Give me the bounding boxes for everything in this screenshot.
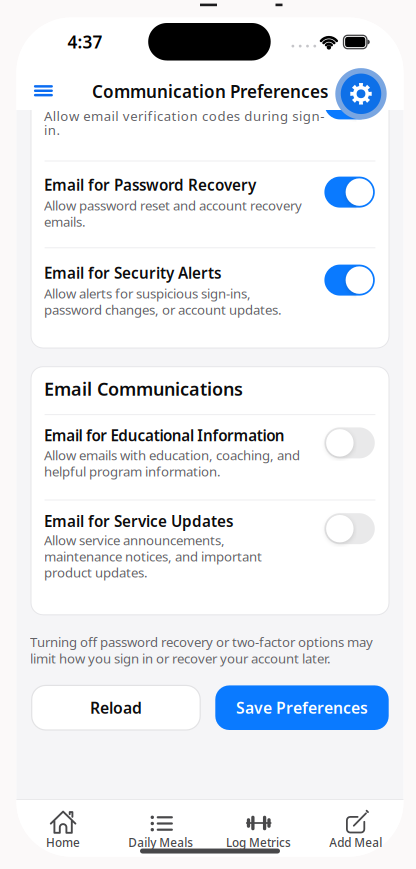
button[interactable]: Email verification codes [324,88,375,119]
button[interactable]: Log Metrics [210,800,307,850]
button[interactable]: Reload [32,685,200,730]
button[interactable]: Email for Service Updates [324,513,375,544]
button[interactable]: Email for Security Alerts [324,265,375,296]
staticText: Save Preferences [236,697,368,718]
staticText: Allow alerts for suspicious sign-ins, pa… [44,285,282,318]
staticText: Email for Password Recovery [44,175,256,195]
staticText: Home [46,835,80,850]
button[interactable]: Add Meal [307,800,403,850]
staticText: Allow password reset and account recover… [44,197,302,230]
staticText: Email Communications [44,377,243,401]
button[interactable]: Home [16,800,113,850]
staticText: Communication Preferences [92,80,328,103]
staticText: Reload [90,697,142,718]
staticText: Allow service announcements, maintenance… [44,532,262,580]
staticText: Email for Educational Information [44,425,285,445]
button[interactable]: Email for Password Recovery [324,177,375,208]
button[interactable]: Daily Meals [113,800,210,850]
button[interactable]: Save Preferences [215,685,389,730]
staticText: Add Meal [329,835,382,850]
staticText: Daily Meals [128,835,193,850]
staticText: Turning off password recovery or two-fac… [30,633,373,667]
staticText: Log Metrics [226,835,291,850]
staticText: Email for Security Alerts [44,263,221,283]
staticText: Allow emails with education, coaching, a… [44,447,300,479]
staticText: Allow email verification codes during si… [44,109,324,137]
button[interactable]: Menu [0,0,60,110]
button[interactable]: Settings [0,0,416,869]
button[interactable]: Email for Educational Information [324,427,375,458]
staticText: 4:37 [67,30,102,53]
staticText: Email for Service Updates [44,511,233,531]
